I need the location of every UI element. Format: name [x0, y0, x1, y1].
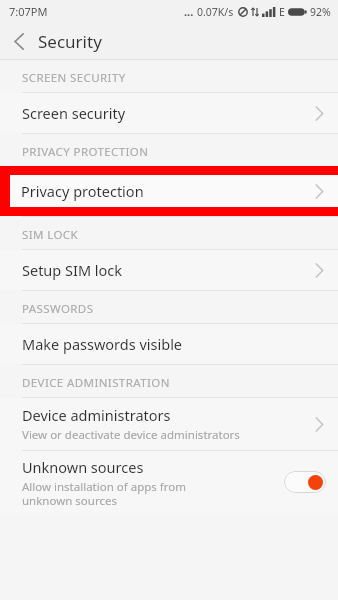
staticText: SIM LOCK	[22, 227, 78, 243]
staticText: Privacy protection	[21, 181, 144, 201]
staticText: 0.07K/s	[197, 5, 234, 19]
staticText: E	[279, 5, 285, 19]
staticText: SCREEN SECURITY	[22, 70, 126, 86]
staticText: Unknown sources	[22, 457, 144, 477]
staticText: View or deactivate device administrators	[22, 427, 240, 443]
staticText: Screen security	[22, 103, 126, 123]
button[interactable]: Setup SIM lock	[0, 250, 338, 290]
staticText: Allow installation of apps from unknown …	[22, 479, 237, 508]
staticText: Setup SIM lock	[22, 260, 123, 280]
button[interactable]: Screen security	[0, 93, 338, 133]
button[interactable]: Back	[0, 22, 38, 60]
staticText: Device administrators	[22, 405, 171, 425]
button[interactable]: Make passwords visible	[0, 324, 338, 364]
staticText: Security	[38, 30, 102, 53]
button[interactable]: Unknown sources toggle	[284, 471, 326, 493]
staticText: 92%	[310, 5, 331, 19]
button[interactable]: Unknown sources	[0, 451, 338, 513]
staticText: PRIVACY PROTECTION	[22, 144, 149, 160]
staticText: Make passwords visible	[22, 334, 183, 354]
button[interactable]: Device administrators	[0, 398, 338, 450]
staticText: 7:07PM	[9, 4, 48, 19]
staticText: DEVICE ADMINISTRATION	[22, 375, 170, 391]
staticText: PASSWORDS	[22, 301, 94, 317]
staticText: ...	[184, 4, 194, 19]
button[interactable]: Privacy protection	[10, 175, 338, 207]
